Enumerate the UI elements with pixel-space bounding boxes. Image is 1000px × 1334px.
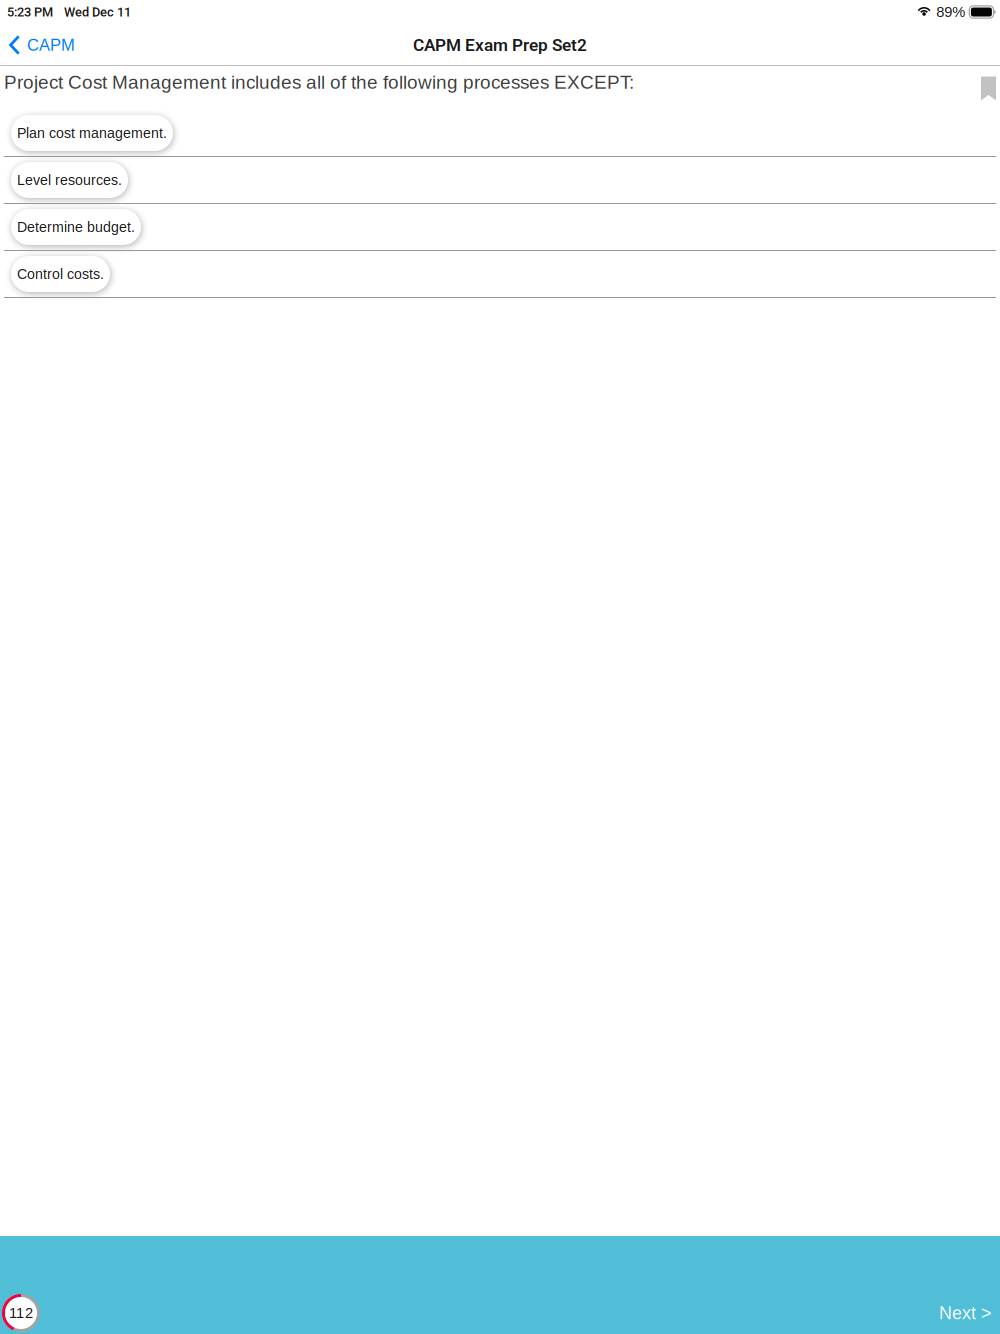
staticText: 112: [9, 1305, 33, 1321]
button[interactable]: Control costs.: [4, 251, 996, 298]
button[interactable]: Question 112 progress: [0, 1293, 41, 1333]
staticText: Determine budget.: [17, 219, 135, 235]
staticText: Project Cost Management includes all of …: [4, 71, 634, 93]
button[interactable]: Plan cost management.: [4, 110, 996, 157]
staticText: Level resources.: [17, 172, 122, 188]
staticText: 5:23 PM: [7, 4, 53, 19]
staticText: Next >: [939, 1303, 991, 1323]
staticText: CAPM Exam Prep Set2: [413, 35, 587, 55]
button[interactable]: Level resources.: [4, 157, 996, 204]
staticText: CAPM: [27, 36, 75, 54]
staticText: Wed Dec 11: [64, 4, 131, 19]
staticText: 89%: [936, 4, 965, 20]
button[interactable]: Determine budget.: [4, 204, 996, 251]
staticText: Control costs.: [17, 266, 104, 282]
button[interactable]: Next >: [930, 1295, 1000, 1331]
button[interactable]: CAPM: [0, 24, 85, 66]
button[interactable]: Bookmark question: [971, 69, 1000, 106]
staticText: Plan cost management.: [17, 125, 167, 141]
